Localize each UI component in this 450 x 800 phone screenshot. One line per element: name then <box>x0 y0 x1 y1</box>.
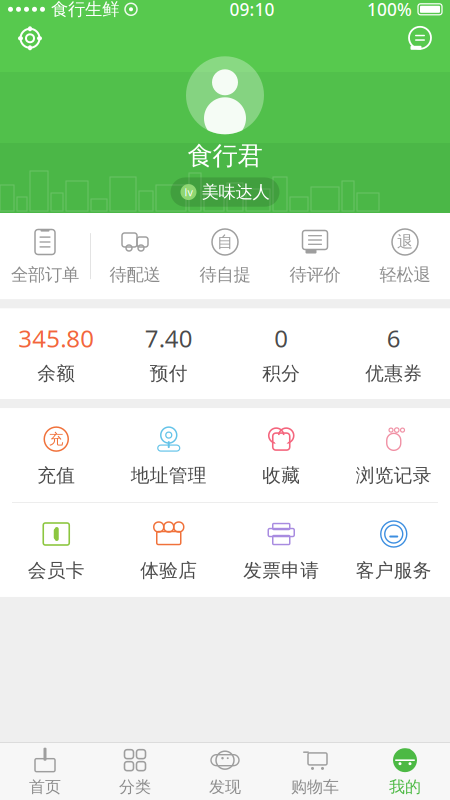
staticText: 7.40 <box>145 322 193 354</box>
button[interactable]: 7.40 <box>112 308 225 399</box>
button[interactable]: 345.80 <box>0 308 112 399</box>
button[interactable]: 购物车 <box>270 740 360 800</box>
button[interactable]: 分类 <box>90 740 180 800</box>
button[interactable]: 全部订单 <box>0 213 90 299</box>
button[interactable]: 客户服务 <box>337 503 450 597</box>
staticText: 美味达人 <box>201 181 269 203</box>
button[interactable]: 首页 <box>0 740 90 800</box>
staticText: 首页 <box>29 777 61 797</box>
staticText: 余额 <box>37 362 75 385</box>
button[interactable]: 会员卡 <box>0 503 112 597</box>
button[interactable]: 我的 <box>360 740 450 800</box>
button[interactable]: 体验店 <box>112 503 225 597</box>
staticText: 浏览记录 <box>356 464 432 487</box>
staticText: 食行生鲜 <box>51 0 119 20</box>
button[interactable]: 充 <box>0 408 112 502</box>
button[interactable]: Settings <box>10 18 50 58</box>
button[interactable]: 待评价 <box>270 213 360 299</box>
staticText: 345.80 <box>18 322 94 354</box>
staticText: 购物车 <box>291 777 339 797</box>
staticText: 客户服务 <box>356 559 432 582</box>
staticText: 待配送 <box>109 264 160 285</box>
button[interactable]: 退 <box>360 213 450 299</box>
staticText: lv <box>184 185 192 199</box>
staticText: 充值 <box>37 464 75 487</box>
staticText: 食行君 <box>187 140 262 171</box>
staticText: 体验店 <box>140 559 197 582</box>
button[interactable]: 待配送 <box>90 213 180 299</box>
staticText: 预付 <box>150 362 188 385</box>
staticText: 6 <box>387 322 401 354</box>
button[interactable]: 浏览记录 <box>337 408 450 502</box>
staticText: 轻松退 <box>379 264 430 285</box>
button[interactable]: 0 <box>225 308 337 399</box>
button[interactable]: 6 <box>337 308 450 399</box>
staticText: 全部订单 <box>11 264 79 285</box>
staticText: 收藏 <box>262 464 300 487</box>
staticText: 地址管理 <box>131 464 207 487</box>
staticText: 会员卡 <box>28 559 85 582</box>
staticText: 100% <box>367 0 412 21</box>
staticText: 待评价 <box>289 264 340 285</box>
staticText: 分类 <box>119 777 151 797</box>
button[interactable]: 自 <box>180 213 270 299</box>
button[interactable]: 收藏 <box>225 408 337 502</box>
staticText: 09:10 <box>229 0 274 21</box>
button[interactable]: 发票申请 <box>225 503 337 597</box>
staticText: 我的 <box>389 777 421 797</box>
staticText: 积分 <box>262 362 300 385</box>
staticText: 待自提 <box>199 264 250 285</box>
staticText: 充 <box>49 430 64 448</box>
staticText: 发现 <box>209 777 241 797</box>
button[interactable]: 地址管理 <box>112 408 225 502</box>
staticText: 自 <box>217 232 233 252</box>
button[interactable]: 发现 <box>180 740 270 800</box>
staticText: 优惠券 <box>365 362 422 385</box>
staticText: 0 <box>274 322 288 354</box>
staticText: 退 <box>397 232 413 252</box>
staticText: 发票申请 <box>243 559 319 582</box>
button[interactable]: Messages <box>400 18 440 58</box>
